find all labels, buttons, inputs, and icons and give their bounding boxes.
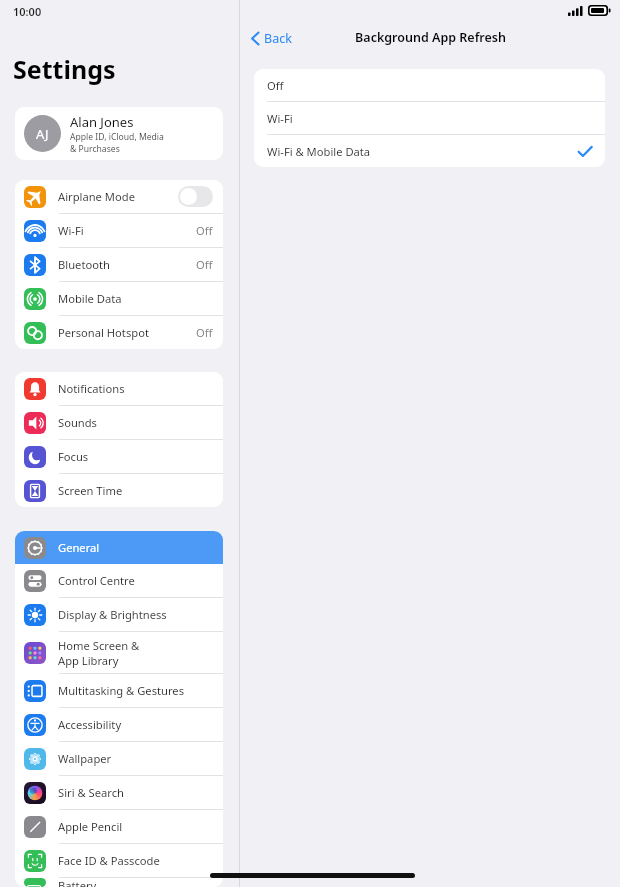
- button[interactable]: General: [15, 531, 223, 564]
- staticText: Off: [196, 257, 213, 272]
- button[interactable]: Airplane Mode: [15, 180, 223, 213]
- button[interactable]: Battery: [15, 878, 223, 887]
- staticText: Battery: [58, 878, 97, 887]
- staticText: Accessibility: [58, 717, 122, 732]
- staticText: Sounds: [58, 415, 97, 430]
- button[interactable]: Airplane Mode off: [178, 186, 213, 207]
- button[interactable]: Siri & Search: [15, 776, 223, 809]
- staticText: Focus: [58, 449, 89, 464]
- button[interactable]: Face ID & Passcode: [15, 844, 223, 877]
- staticText: Settings: [13, 52, 116, 86]
- staticText: 10:00: [13, 4, 42, 19]
- staticText: Screen Time: [58, 483, 123, 498]
- button[interactable]: Wi-Fi & Mobile Data: [254, 135, 605, 167]
- button[interactable]: Wi-Fi: [15, 214, 223, 247]
- button[interactable]: Display & Brightness: [15, 598, 223, 631]
- staticText: Off: [196, 223, 213, 238]
- staticText: Face ID & Passcode: [58, 853, 160, 868]
- staticText: Background App Refresh: [355, 29, 506, 46]
- staticText: Control Centre: [58, 573, 135, 588]
- staticText: General: [58, 540, 100, 555]
- button[interactable]: Bluetooth: [15, 248, 223, 281]
- button[interactable]: Notifications: [15, 372, 223, 405]
- button[interactable]: Off: [254, 69, 605, 101]
- staticText: Apple Pencil: [58, 819, 123, 834]
- button[interactable]: Multitasking & Gestures: [15, 674, 223, 707]
- staticText: Home Screen &: [58, 638, 140, 653]
- button[interactable]: Sounds: [15, 406, 223, 439]
- staticText: Wi-Fi: [267, 111, 592, 126]
- staticText: Mobile Data: [58, 291, 122, 306]
- staticText: Siri & Search: [58, 785, 124, 800]
- button[interactable]: Screen Time: [15, 474, 223, 507]
- staticText: Wi-Fi: [58, 223, 84, 238]
- staticText: Off: [196, 325, 213, 340]
- staticText: App Library: [58, 653, 119, 668]
- button[interactable]: Control Centre: [15, 564, 223, 597]
- staticText: & Purchases: [70, 143, 120, 155]
- staticText: Off: [267, 78, 592, 93]
- staticText: Back: [264, 30, 292, 47]
- button[interactable]: Wallpaper: [15, 742, 223, 775]
- staticText: Notifications: [58, 381, 125, 396]
- staticText: AJ: [36, 125, 49, 143]
- staticText: Multitasking & Gestures: [58, 683, 185, 698]
- button[interactable]: Mobile Data: [15, 282, 223, 315]
- button[interactable]: Accessibility: [15, 708, 223, 741]
- staticText: Wallpaper: [58, 751, 112, 766]
- staticText: Display & Brightness: [58, 607, 167, 622]
- button[interactable]: Focus: [15, 440, 223, 473]
- staticText: Apple ID, iCloud, Media: [70, 131, 164, 143]
- button[interactable]: AJ: [15, 107, 223, 160]
- button[interactable]: Personal Hotspot: [15, 316, 223, 349]
- button[interactable]: Wi-Fi: [254, 102, 605, 134]
- staticText: Alan Jones: [70, 113, 134, 131]
- button[interactable]: Home Screen &: [15, 632, 223, 673]
- staticText: Wi-Fi & Mobile Data: [267, 144, 578, 159]
- button[interactable]: Back: [248, 27, 295, 50]
- staticText: Airplane Mode: [58, 189, 135, 204]
- staticText: Personal Hotspot: [58, 325, 149, 340]
- staticText: Bluetooth: [58, 257, 110, 272]
- button[interactable]: Apple Pencil: [15, 810, 223, 843]
